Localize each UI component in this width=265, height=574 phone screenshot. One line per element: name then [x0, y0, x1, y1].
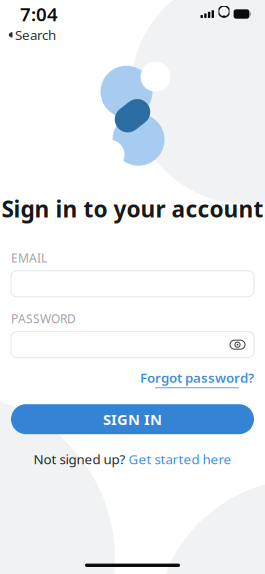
staticText: Search [15, 26, 56, 44]
staticText: PASSWORD [11, 311, 76, 327]
button[interactable] [11, 271, 254, 297]
staticText: Forgot password? [140, 369, 254, 386]
button[interactable]: SIGN IN [11, 404, 254, 434]
button[interactable]: Get started here [128, 450, 231, 468]
button[interactable]: Forgot password? [140, 369, 254, 388]
staticText: Not signed up? [33, 450, 125, 468]
button[interactable]: Search [0, 24, 56, 46]
staticText: SIGN IN [103, 409, 162, 429]
button[interactable] [11, 332, 254, 358]
staticText: Sign in to your account [1, 194, 263, 224]
staticText: 7:04 [20, 2, 58, 26]
staticText: EMAIL [11, 250, 47, 266]
staticText: Get started here [128, 450, 231, 468]
